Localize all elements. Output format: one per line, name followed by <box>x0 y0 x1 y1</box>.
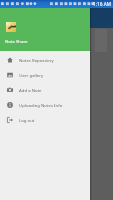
staticText: 1:16 AM <box>93 1 112 8</box>
staticText: Note Share <box>5 38 28 44</box>
staticText: User gallery <box>19 72 44 78</box>
button[interactable]: Notes Repository <box>0 52 90 67</box>
staticText: Notes Repository <box>19 57 54 63</box>
button[interactable]: User gallery <box>0 67 90 82</box>
staticText: Log out <box>19 117 35 123</box>
button[interactable]: Log out <box>0 112 90 127</box>
button[interactable]: Uploading Notes Info <box>0 97 90 112</box>
button[interactable]: Add a Note <box>0 82 90 97</box>
staticText: Uploading Notes Info <box>19 102 63 108</box>
staticText: Add a Note <box>19 87 42 93</box>
